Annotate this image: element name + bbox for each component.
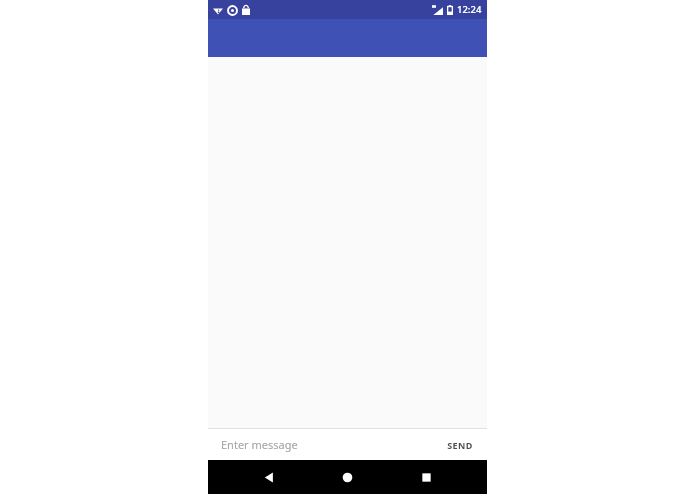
staticText: SEND	[447, 439, 473, 451]
staticText: 12:24	[457, 3, 482, 16]
staticText: Enter message	[221, 437, 298, 452]
button[interactable]: SEND	[433, 429, 487, 460]
button[interactable]: Home	[330, 460, 364, 494]
button[interactable]: Back	[252, 460, 286, 494]
button[interactable]: Recents	[409, 460, 443, 494]
button[interactable]: Enter message	[208, 429, 433, 460]
